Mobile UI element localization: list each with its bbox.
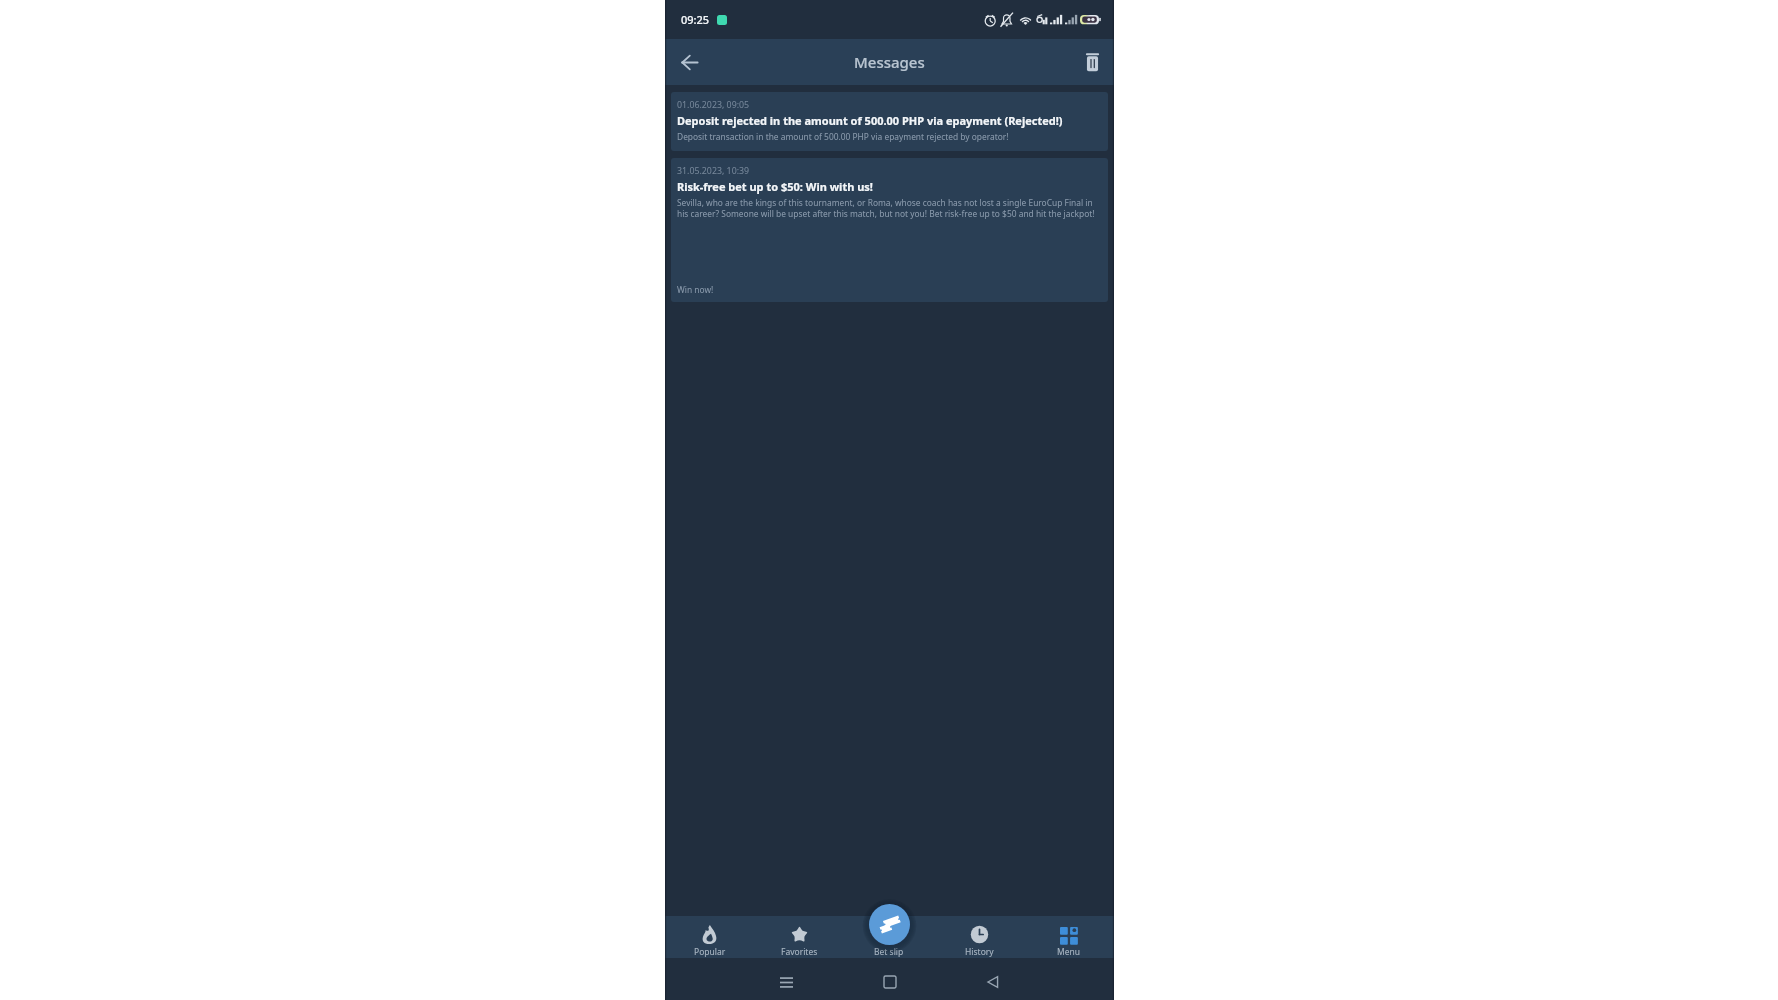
- button[interactable]: Recent apps: [766, 962, 806, 1000]
- button[interactable]: Back: [667, 40, 711, 84]
- staticText: Popular: [694, 946, 726, 958]
- staticText: Deposit transaction in the amount of 500…: [677, 131, 1009, 142]
- staticText: 09:25: [681, 12, 710, 27]
- button[interactable]: Back: [973, 962, 1013, 1000]
- button[interactable]: Delete all messages: [1070, 40, 1114, 84]
- staticText: Favorites: [781, 946, 818, 958]
- button[interactable]: History: [934, 916, 1024, 958]
- button[interactable]: 01.06.2023, 09:05: [671, 92, 1108, 151]
- button[interactable]: Favorites: [754, 916, 844, 958]
- button[interactable]: 31.05.2023, 10:39: [671, 158, 1108, 302]
- staticText: Risk-free bet up to $50: Win with us!: [677, 179, 873, 194]
- button[interactable]: Popular: [665, 916, 754, 958]
- staticText: Bet slip: [874, 946, 904, 958]
- staticText: Sevilla, who are the kings of this tourn…: [677, 197, 1102, 219]
- button[interactable]: Menu: [1024, 916, 1114, 958]
- staticText: Menu: [1057, 946, 1081, 958]
- button[interactable]: Home: [870, 962, 910, 1000]
- staticText: 31.05.2023, 10:39: [677, 165, 750, 177]
- button[interactable]: Bet slip: [844, 916, 934, 958]
- staticText: Deposit rejected in the amount of 500.00…: [677, 113, 1063, 128]
- button[interactable]: Bet slip: [869, 904, 910, 945]
- staticText: History: [965, 946, 994, 958]
- staticText: Messages: [854, 52, 925, 72]
- staticText: Win now!: [677, 284, 714, 295]
- staticText: 01.06.2023, 09:05: [677, 99, 750, 111]
